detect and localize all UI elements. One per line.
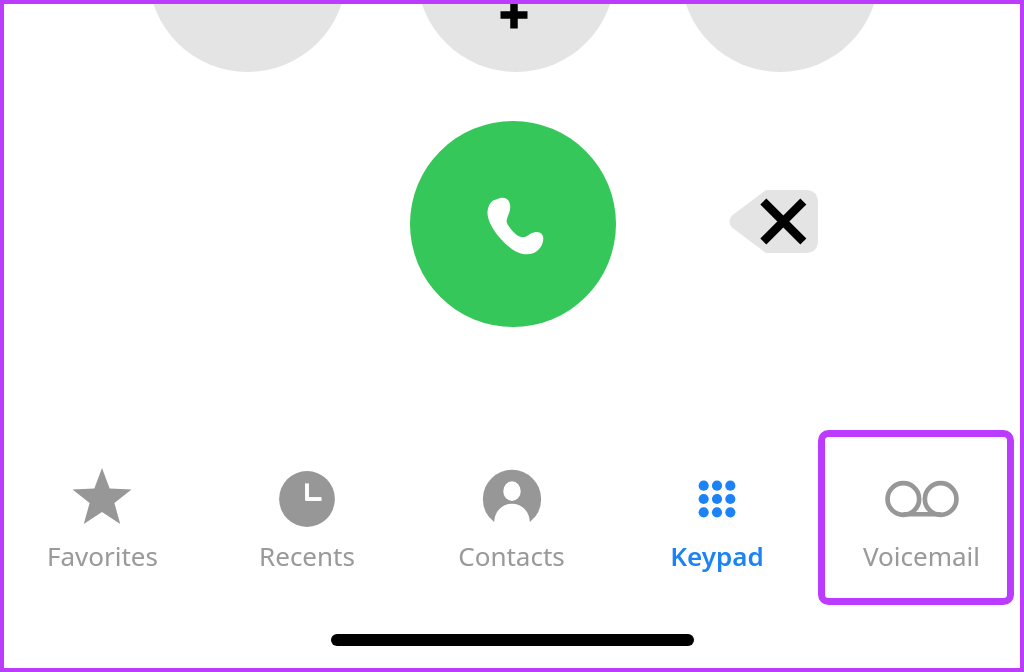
button[interactable]: Recents [204,452,409,573]
button[interactable]: Delete [726,188,820,255]
staticText: Contacts [458,538,565,573]
staticText: Voicemail [863,538,980,573]
staticText: Favorites [47,538,158,573]
button[interactable]: Keypad [614,452,819,573]
button[interactable]: Call [410,121,616,327]
staticText: Keypad [670,538,764,573]
button[interactable]: Contacts [409,452,614,573]
button[interactable]: Voicemail [819,452,1024,573]
staticText: Recents [259,538,355,573]
button[interactable]: Favorites [0,452,204,573]
